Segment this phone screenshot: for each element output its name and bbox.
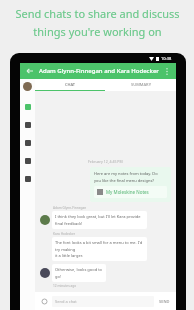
button[interactable]: Attach xyxy=(39,296,49,306)
button[interactable]: Otherwise, looks good to go! xyxy=(55,267,103,279)
button[interactable]: Here are my notes from today. Do you lik… xyxy=(94,171,167,198)
staticText: Send chats to share and discuss xyxy=(15,6,180,21)
button[interactable]: Profile xyxy=(23,82,32,91)
button[interactable]: More options xyxy=(162,66,172,76)
staticText: 12 minutes ago xyxy=(53,284,77,288)
staticText: Send a chat xyxy=(55,299,77,304)
staticText: Adam Glynn-Finnegan xyxy=(53,206,87,210)
button[interactable]: My Moleskine Notes xyxy=(97,189,164,195)
staticText: 10:38 xyxy=(161,56,172,61)
button[interactable]: CHAT xyxy=(35,79,105,90)
staticText: The font looks a bit small for a menu to… xyxy=(55,240,144,258)
staticText: Kara Hodecker xyxy=(53,232,76,236)
staticText: SUMMARY xyxy=(131,82,151,87)
staticText: SEND xyxy=(159,299,170,304)
button[interactable]: Send a chat xyxy=(55,296,151,307)
button[interactable]: Notes xyxy=(22,119,33,130)
button[interactable]: Back xyxy=(24,65,36,77)
staticText: February 12, 4:45 PM xyxy=(88,159,123,164)
button[interactable]: The font looks a bit small for a menu to… xyxy=(55,240,144,258)
staticText: Here are my notes from today. Do you lik… xyxy=(94,171,158,183)
staticText: Adam Glynn-Finnegan and Kara Hodecker xyxy=(39,67,159,75)
button[interactable]: I think they look great, but I'll let Ka… xyxy=(55,214,144,226)
button[interactable]: More xyxy=(22,173,33,184)
button[interactable]: SEND xyxy=(157,297,172,306)
staticText: Otherwise, looks good to go! xyxy=(55,267,103,279)
button[interactable]: Tasks xyxy=(22,155,33,166)
staticText: things you're working on xyxy=(33,24,162,39)
staticText: My Moleskine Notes xyxy=(106,189,149,195)
button[interactable]: SUMMARY xyxy=(105,79,176,90)
button[interactable]: Chats xyxy=(22,101,33,112)
button[interactable]: Files xyxy=(22,137,33,148)
staticText: CHAT xyxy=(65,82,76,87)
staticText: I think they look great, but I'll let Ka… xyxy=(55,214,144,226)
